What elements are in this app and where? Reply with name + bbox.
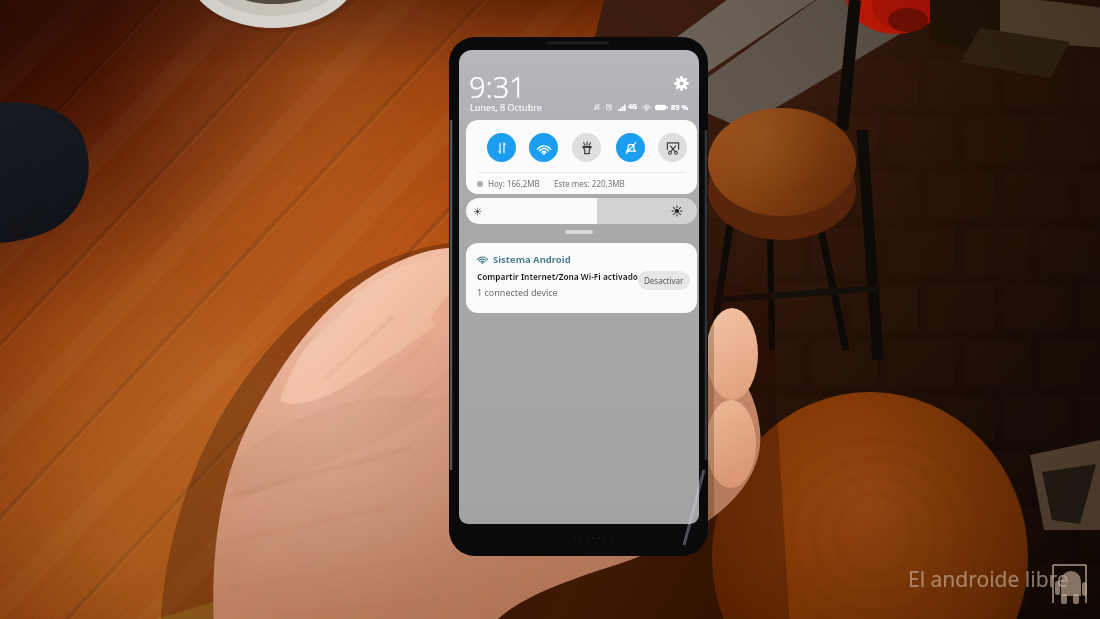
staticText: 1 connected device [477,286,558,298]
staticText: 4G [628,102,638,112]
staticText: El androide libre [908,565,1069,594]
button[interactable]: Wi-Fi [529,133,558,162]
staticText: Hoy: 166,2MB [488,178,540,189]
staticText: Lunes, 8 Octubre [470,101,542,113]
staticText: 9:31 [469,67,526,106]
staticText: 89 % [671,102,689,112]
button[interactable]: Desactivar [638,271,690,290]
button[interactable]: Mobile data [487,133,516,162]
button[interactable]: Sistema Android [466,243,697,313]
button[interactable]: Brightness [466,198,697,224]
staticText: Compartir Internet/Zona Wi-Fi activado [477,271,638,282]
staticText: Desactivar [644,275,684,286]
button[interactable]: Silent mode [616,133,645,162]
staticText: Este mes: 220,3MB [554,178,625,189]
button[interactable]: Screenshot [658,133,687,162]
button[interactable]: Settings [674,76,689,91]
button[interactable]: Flashlight [572,133,601,162]
staticText: Sistema Android [493,253,571,266]
